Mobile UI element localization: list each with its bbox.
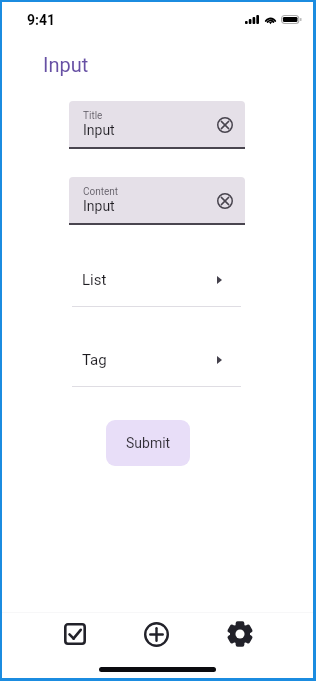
button[interactable]: Clear text [217, 193, 233, 209]
staticText: Input [83, 122, 115, 138]
staticText: 9:41 [27, 12, 56, 28]
button[interactable]: Tasks [41, 611, 109, 657]
staticText: Input [43, 53, 89, 76]
button[interactable]: Clear text [217, 117, 233, 133]
button[interactable]: Add [122, 611, 190, 657]
staticText: Input [83, 198, 115, 214]
button[interactable]: Tag [72, 350, 241, 387]
staticText: Tag [82, 351, 107, 369]
staticText: Submit [126, 435, 171, 451]
button[interactable]: Title [69, 101, 245, 149]
button[interactable]: Submit [106, 420, 190, 466]
button[interactable]: Settings [206, 611, 274, 657]
button[interactable]: Content [69, 177, 245, 225]
button[interactable]: List [72, 270, 241, 307]
staticText: List [82, 271, 107, 289]
staticText: Title [83, 110, 103, 122]
staticText: Content [83, 186, 119, 198]
